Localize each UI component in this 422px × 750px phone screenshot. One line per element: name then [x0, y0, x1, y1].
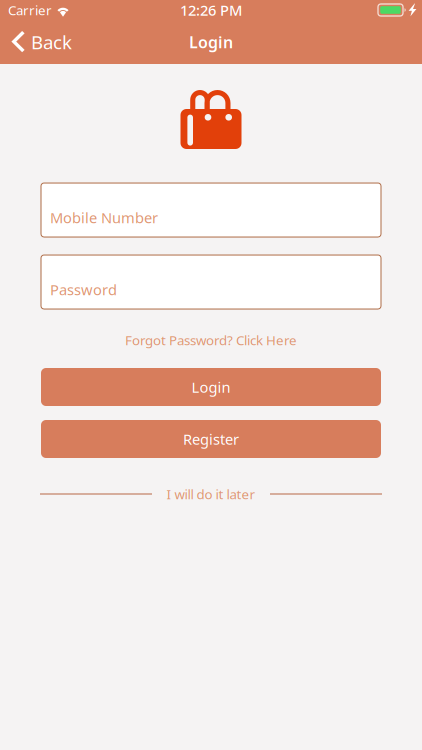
staticText: Login: [191, 377, 230, 397]
button[interactable]: Login: [41, 368, 381, 406]
staticText: 12:26 PM: [180, 0, 242, 20]
button[interactable]: Back: [0, 20, 82, 64]
staticText: Password: [50, 280, 117, 299]
staticText: I will do it later: [166, 485, 255, 503]
button[interactable]: Forgot Password? Click Here: [41, 327, 381, 353]
button[interactable]: Register: [41, 420, 381, 458]
staticText: Login: [189, 31, 233, 53]
staticText: Mobile Number: [50, 208, 158, 227]
staticText: Carrier: [8, 1, 52, 19]
button[interactable]: Mobile Number: [41, 183, 381, 237]
staticText: Forgot Password? Click Here: [125, 331, 297, 349]
button[interactable]: Password: [41, 255, 381, 309]
button[interactable]: I will do it later: [40, 484, 382, 504]
staticText: Register: [183, 429, 239, 449]
staticText: Back: [31, 30, 72, 54]
